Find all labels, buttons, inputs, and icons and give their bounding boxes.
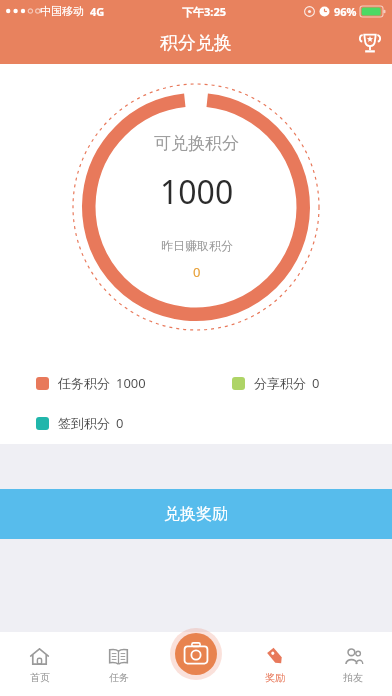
staticText: 拍友 xyxy=(343,671,363,684)
staticText: 积分兑换 xyxy=(160,32,232,55)
staticText: 奖励 xyxy=(265,671,285,684)
staticText: 签到积分 xyxy=(58,415,110,431)
staticText: 0 xyxy=(116,414,124,432)
staticText: 4G xyxy=(90,4,105,19)
button[interactable]: 兑换奖励 xyxy=(0,489,392,539)
button[interactable]: 奖励 xyxy=(236,633,314,696)
staticText: 任务 xyxy=(109,671,129,684)
staticText: 0 xyxy=(193,263,201,281)
staticText: 中国移动 xyxy=(40,4,84,18)
staticText: 分享积分 xyxy=(254,375,306,391)
staticText: 首页 xyxy=(30,671,50,684)
staticText: 96% xyxy=(334,4,357,19)
staticText: 1000 xyxy=(160,170,234,214)
staticText: 0 xyxy=(312,374,320,392)
staticText: 兑换奖励 xyxy=(164,504,228,524)
staticText: 昨日赚取积分 xyxy=(161,238,233,253)
staticText: 下午3:25 xyxy=(182,4,226,19)
button[interactable]: Achievements xyxy=(348,22,392,64)
button[interactable]: Camera xyxy=(170,628,222,680)
staticText: 任务积分 xyxy=(58,375,110,391)
button[interactable]: 任务 xyxy=(79,633,158,696)
button[interactable]: 首页 xyxy=(0,633,79,696)
staticText: 可兑换积分 xyxy=(154,133,239,154)
button[interactable]: 拍友 xyxy=(314,633,392,696)
staticText: 1000 xyxy=(116,374,146,392)
